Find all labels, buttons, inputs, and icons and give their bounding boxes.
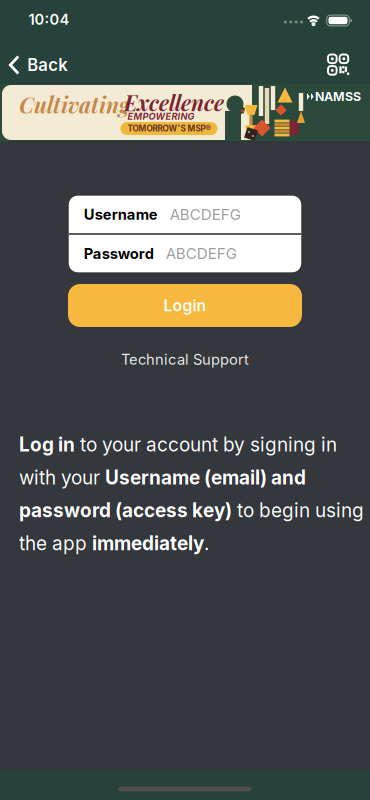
staticText: Password [84, 245, 154, 262]
staticText: 10:04 [28, 11, 69, 28]
staticText: Technical Support [121, 351, 249, 368]
button[interactable]: Scan QR code [327, 54, 349, 76]
staticText: TOMORROW'S MSP® [127, 123, 210, 133]
staticText: Username [84, 206, 158, 223]
staticText: with your Username (email) and [19, 466, 306, 489]
button[interactable]: Password text field [69, 235, 301, 272]
staticText: Cultivating [19, 90, 129, 119]
button[interactable]: NAMSS Cultivating Excellence banner [0, 84, 370, 141]
button[interactable]: Back [10, 55, 67, 75]
staticText: ABCDEFG [170, 205, 241, 223]
staticText: ABCDEFG [166, 244, 237, 263]
button[interactable]: Username text field [69, 196, 301, 233]
staticText: the app immediately. [19, 532, 209, 555]
button[interactable]: Technical Support [121, 351, 249, 368]
staticText: NAMSS [315, 89, 361, 104]
staticText: Back [27, 55, 67, 75]
button[interactable]: Login [68, 284, 302, 327]
staticText: password (access key) to begin using [19, 499, 364, 522]
staticText: EMPOWERING [127, 111, 194, 122]
staticText: Log in to your account by signing in [19, 433, 337, 456]
staticText: Login [163, 296, 206, 315]
staticText: Excellence [124, 88, 224, 117]
